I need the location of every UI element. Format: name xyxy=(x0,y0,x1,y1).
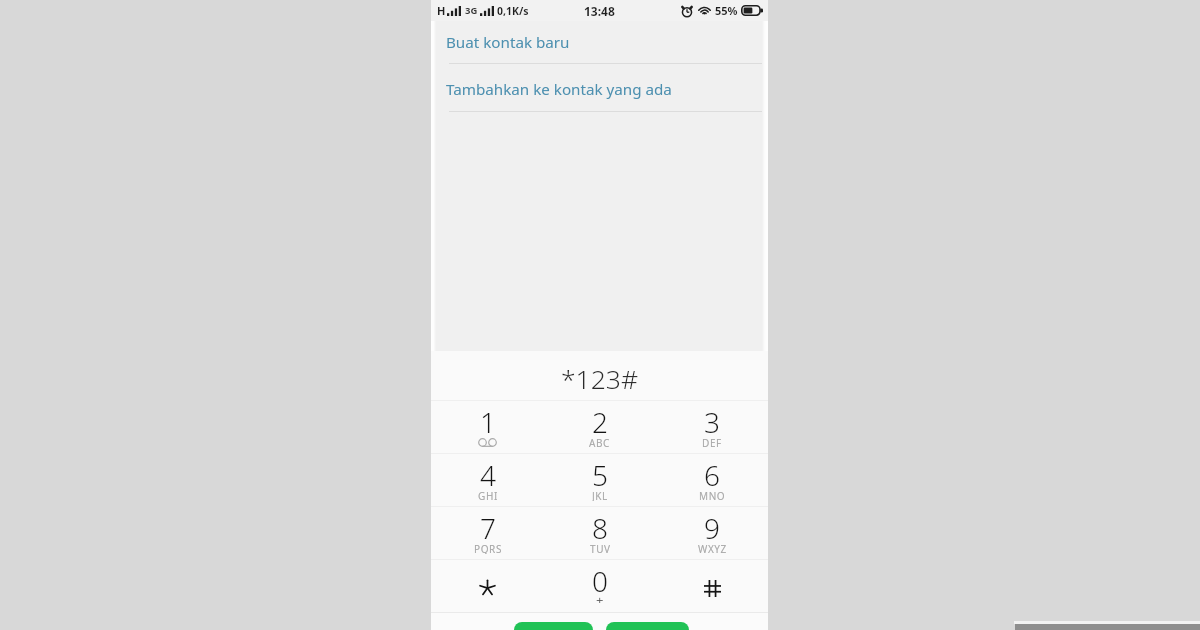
staticText: 3 xyxy=(704,403,720,439)
staticText: 2 xyxy=(592,403,608,439)
staticText: Tambahkan ke kontak yang ada xyxy=(446,79,672,100)
staticText: Buat kontak baru xyxy=(446,32,570,53)
button[interactable]: Key 8 xyxy=(544,507,656,559)
staticText: 55% xyxy=(715,3,738,18)
button[interactable]: Key 1 xyxy=(431,401,544,453)
button[interactable]: Star key xyxy=(431,560,544,612)
staticText: GHI xyxy=(478,489,498,501)
button[interactable]: Call with SIM 2 xyxy=(606,622,689,630)
staticText: 3G xyxy=(465,4,478,17)
staticText: MNO xyxy=(699,489,726,501)
button[interactable]: Key 2 xyxy=(544,401,656,453)
staticText: WXYZ xyxy=(698,542,727,554)
button[interactable]: Pound key xyxy=(656,560,768,612)
staticText: 1 xyxy=(480,403,496,439)
staticText: DEF xyxy=(702,436,722,448)
staticText: H xyxy=(437,3,446,18)
staticText: + xyxy=(596,591,604,603)
staticText: 6 xyxy=(704,456,720,492)
button[interactable]: Call with SIM 1 xyxy=(514,622,593,630)
button[interactable]: Key 4 xyxy=(431,454,544,506)
staticText: PQRS xyxy=(474,542,502,554)
button[interactable]: Key 0 xyxy=(544,560,656,612)
staticText: *123# xyxy=(561,361,639,397)
button[interactable]: Key 6 xyxy=(656,454,768,506)
button[interactable]: Key 7 xyxy=(431,507,544,559)
staticText: ABC xyxy=(589,436,611,448)
staticText: 5 xyxy=(592,456,608,492)
staticText: 8 xyxy=(592,509,608,545)
staticText: 0,1K/s xyxy=(497,4,529,18)
staticText: 4 xyxy=(480,456,496,492)
button[interactable]: Key 9 xyxy=(656,507,768,559)
staticText: 13:48 xyxy=(584,3,615,19)
staticText: JKL xyxy=(592,489,608,501)
button[interactable]: Key 3 xyxy=(656,401,768,453)
staticText: 0 xyxy=(592,562,608,598)
staticText: 9 xyxy=(704,509,720,545)
staticText: TUV xyxy=(590,542,611,554)
staticText: 7 xyxy=(480,509,496,545)
button[interactable]: Buat kontak baru xyxy=(431,21,768,63)
button[interactable]: Key 5 xyxy=(544,454,656,506)
button[interactable]: Tambahkan ke kontak yang ada xyxy=(431,68,768,111)
